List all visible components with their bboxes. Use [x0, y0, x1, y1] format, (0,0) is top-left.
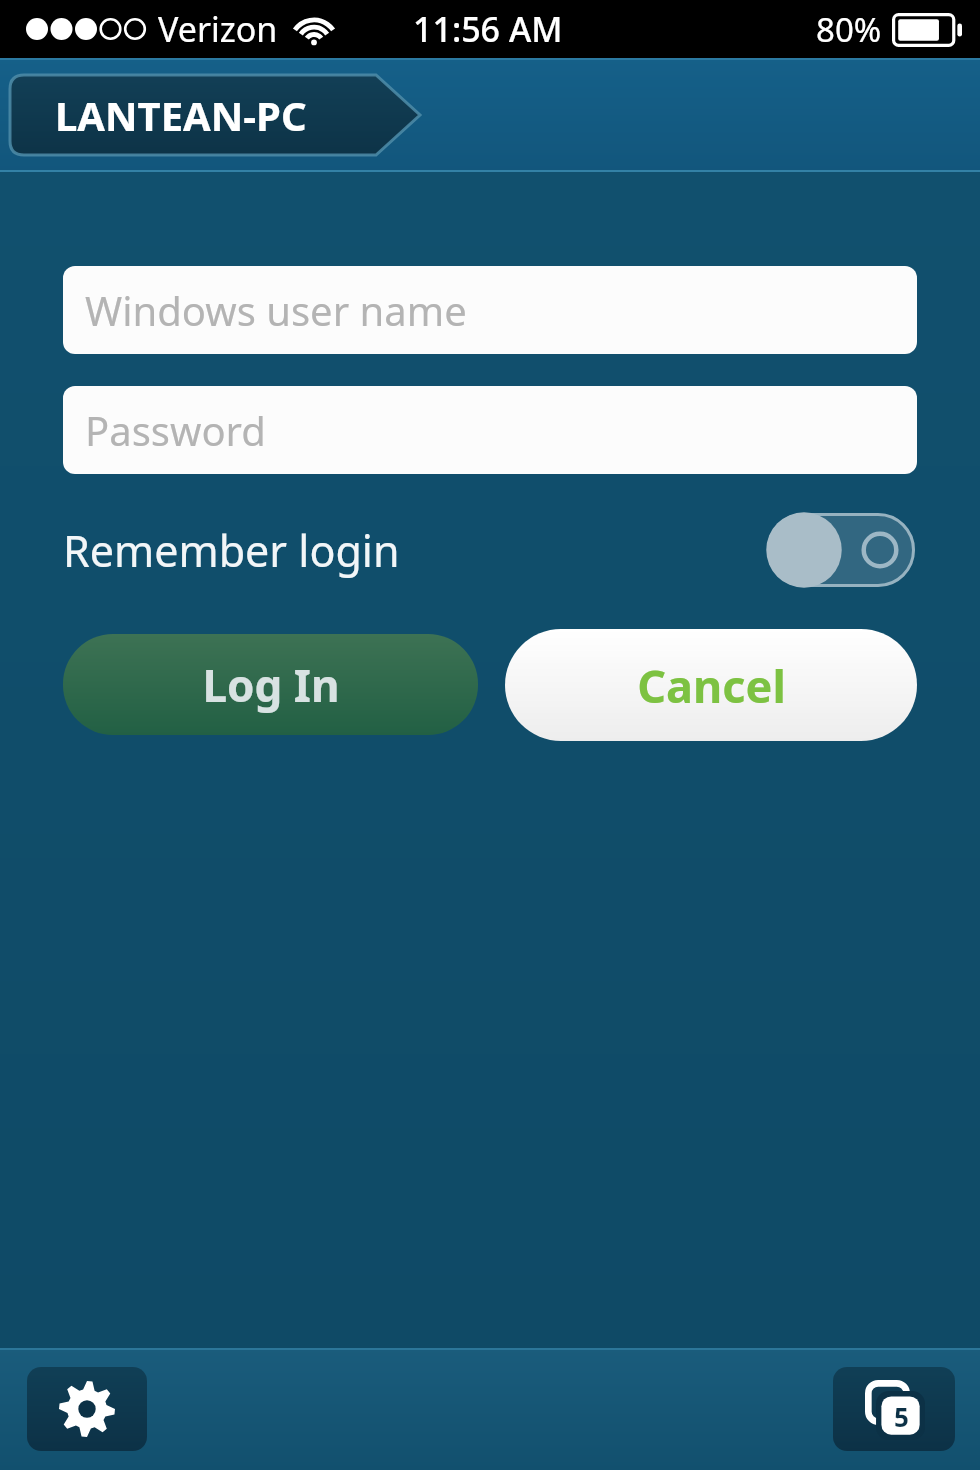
button[interactable]: Remember login toggle, off	[767, 513, 915, 587]
staticText: Log In	[202, 655, 340, 715]
staticText: Remember login	[63, 521, 400, 580]
button[interactable]: LANTEAN-PC	[10, 75, 420, 155]
button[interactable]: Password	[63, 386, 917, 474]
staticText: Windows user name	[85, 283, 467, 337]
staticText: Cancel	[637, 655, 786, 716]
staticText: LANTEAN-PC	[55, 88, 307, 142]
staticText: Password	[85, 403, 266, 457]
staticText: Verizon	[158, 6, 278, 52]
button[interactable]: Settings	[27, 1367, 147, 1451]
staticText: 11:56 AM	[413, 6, 563, 52]
staticText: 5	[894, 1399, 909, 1434]
button[interactable]: Tabs, 5 open	[833, 1367, 955, 1451]
button[interactable]: Cancel	[505, 629, 917, 741]
staticText: 80%	[816, 7, 882, 52]
button[interactable]: Windows user name	[63, 266, 917, 354]
button[interactable]: Log In	[63, 634, 478, 735]
